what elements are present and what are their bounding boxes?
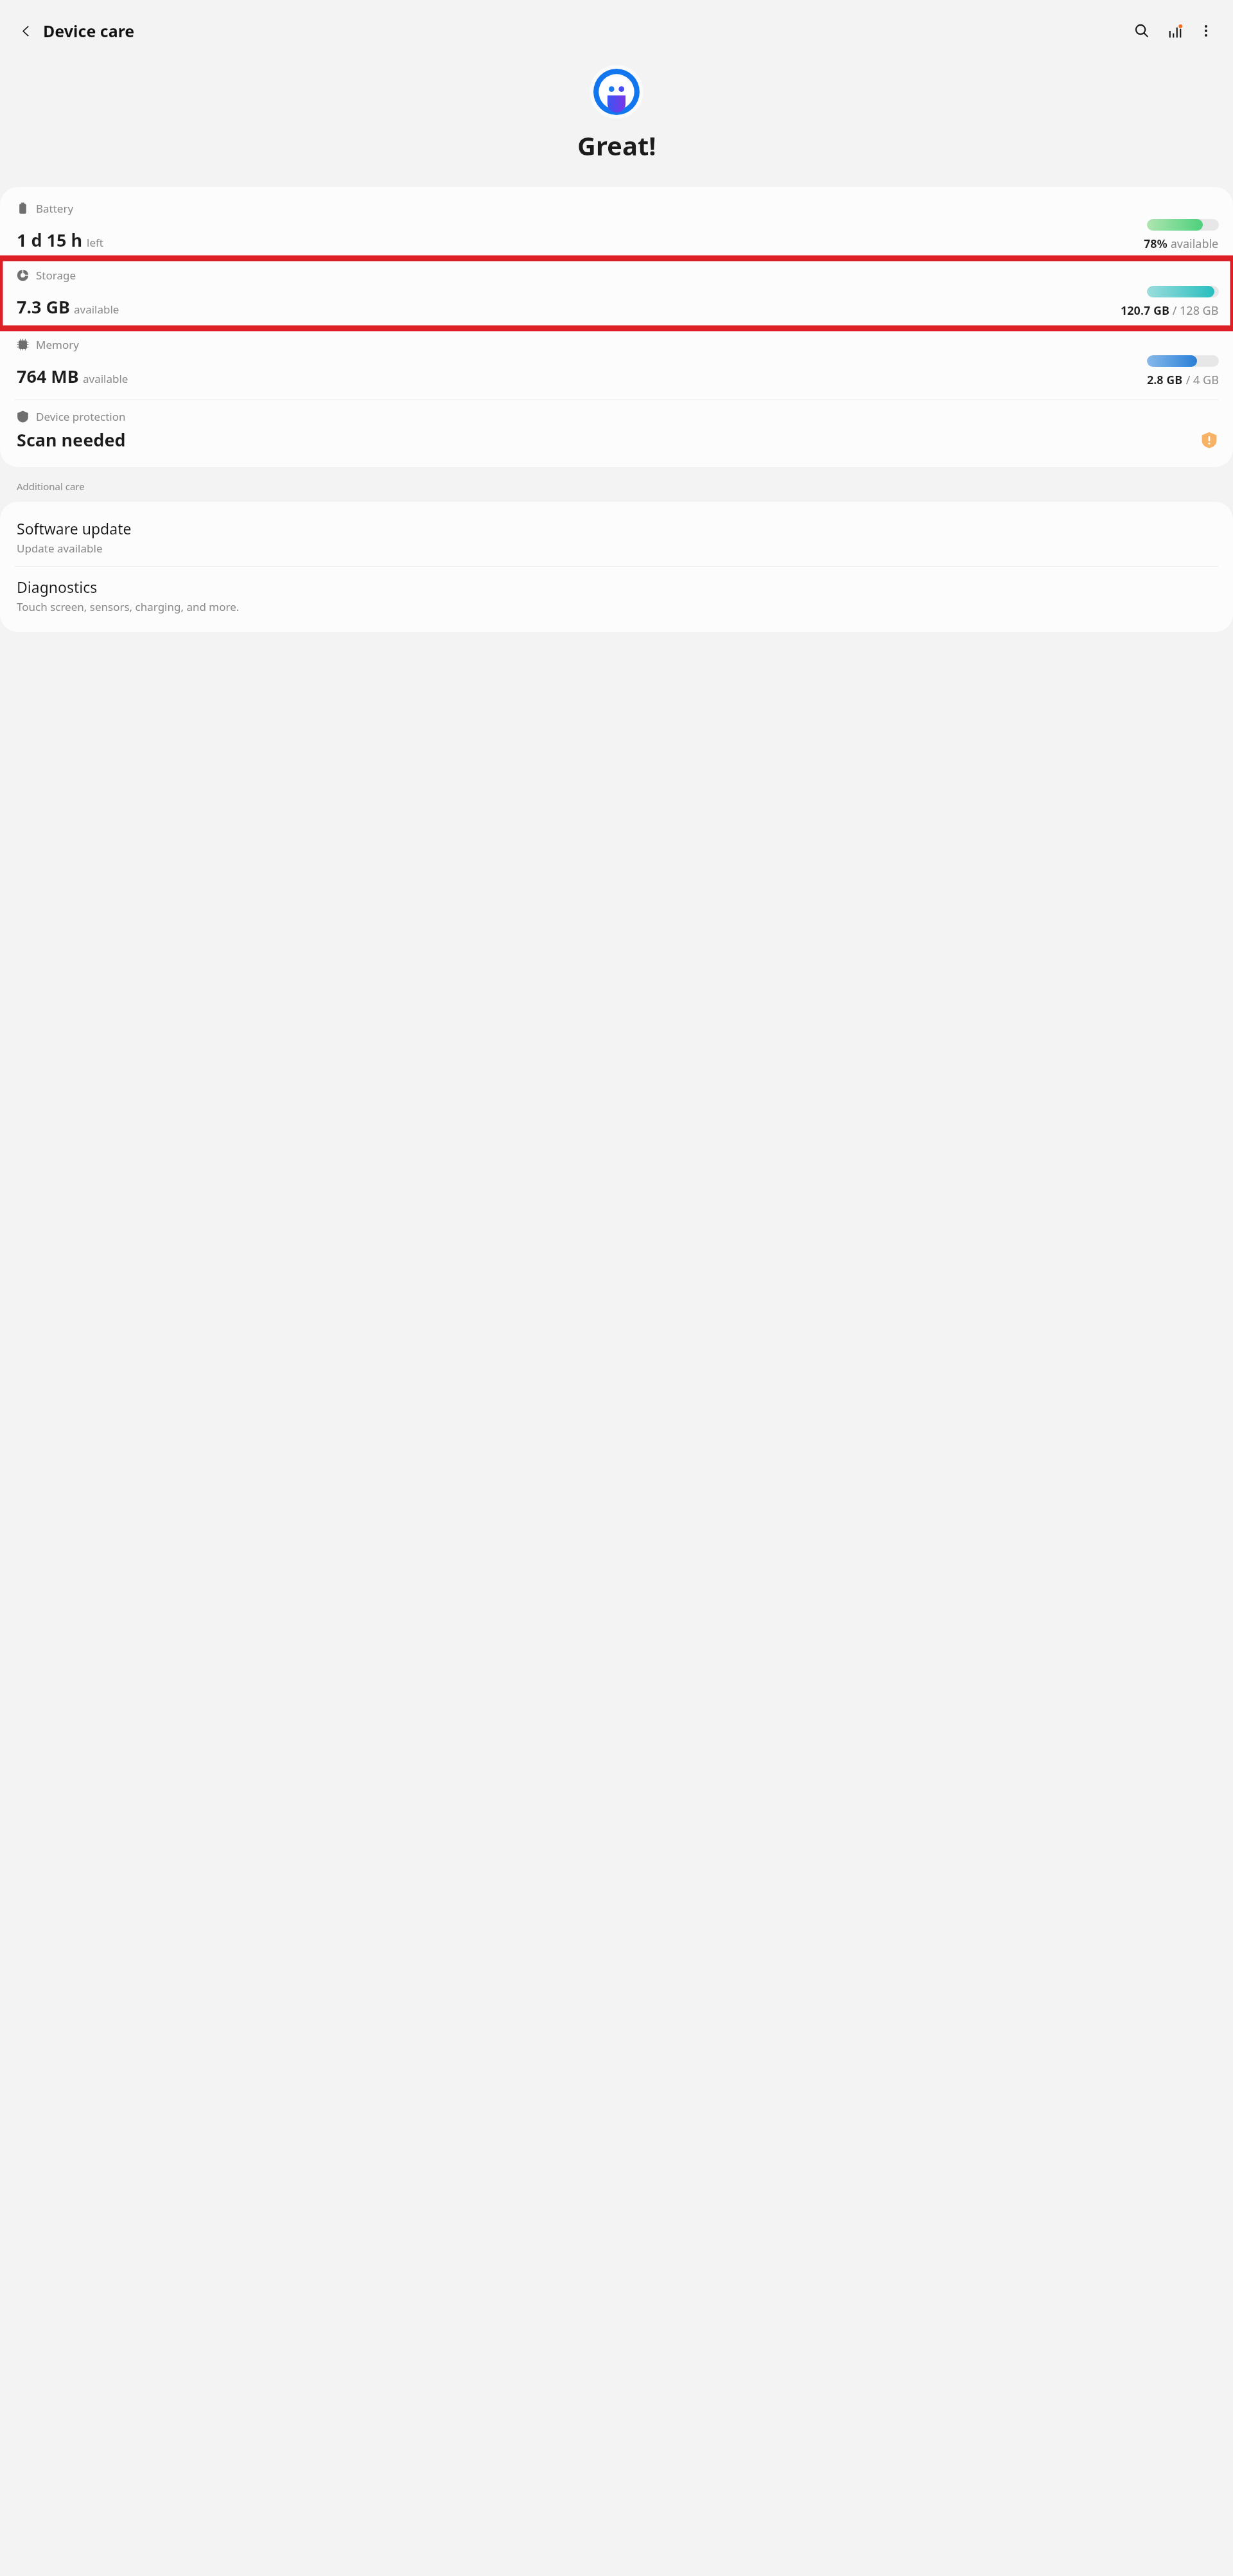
staticText: Scan needed: [17, 428, 126, 452]
staticText: Battery: [36, 201, 74, 216]
staticText: available: [1167, 236, 1219, 252]
staticText: 7.3 GB: [17, 295, 70, 319]
staticText: / 128 GB: [1169, 303, 1219, 319]
staticText: 120.7 GB: [1121, 303, 1169, 319]
staticText: Great!: [577, 128, 656, 163]
staticText: available: [74, 302, 119, 317]
button[interactable]: Battery: [0, 197, 1233, 256]
button[interactable]: Diagnostics: [0, 567, 1233, 624]
staticText: Update available: [17, 541, 103, 556]
staticText: 1 d 15 h: [17, 228, 83, 252]
staticText: Touch screen, sensors, charging, and mor…: [17, 599, 240, 614]
staticText: Device care: [43, 20, 135, 42]
button[interactable]: Memory: [0, 333, 1233, 392]
button[interactable]: Software update: [0, 508, 1233, 566]
staticText: available: [83, 371, 128, 386]
button[interactable]: Storage: [0, 264, 1233, 322]
button[interactable]: Search: [1128, 17, 1156, 45]
staticText: Storage: [36, 268, 76, 283]
staticText: Memory: [36, 337, 79, 352]
button[interactable]: Back: [13, 18, 39, 44]
staticText: Diagnostics: [17, 577, 98, 597]
staticText: left: [87, 235, 103, 250]
button[interactable]: More options: [1192, 17, 1220, 45]
staticText: 764 MB: [17, 364, 79, 388]
staticText: Device protection: [36, 409, 126, 424]
staticText: Additional care: [17, 480, 85, 493]
button[interactable]: Device protection: [0, 407, 1233, 454]
staticText: 2.8 GB: [1147, 372, 1183, 388]
staticText: Software update: [17, 518, 132, 538]
button[interactable]: Usage statistics: [1161, 17, 1189, 45]
staticText: 78%: [1144, 236, 1167, 252]
staticText: / 4 GB: [1183, 372, 1219, 388]
